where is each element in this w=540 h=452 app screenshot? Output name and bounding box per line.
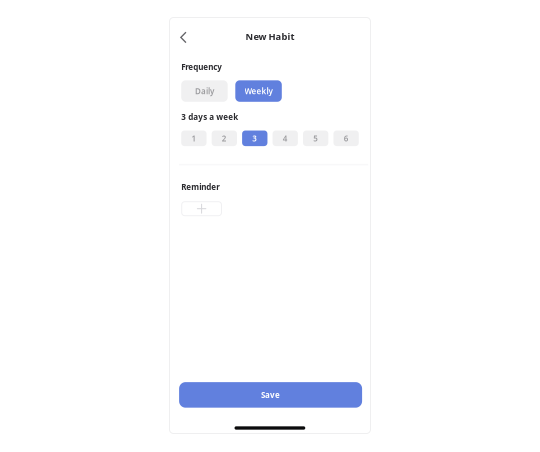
staticText: 4 bbox=[283, 133, 288, 144]
button[interactable]: 3 bbox=[242, 130, 267, 146]
button[interactable]: 2 bbox=[212, 130, 237, 146]
staticText: 2 bbox=[222, 133, 227, 144]
staticText: Daily bbox=[195, 86, 214, 96]
staticText: 3 days a week bbox=[181, 112, 238, 122]
button[interactable]: Daily bbox=[181, 80, 228, 102]
staticText: Weekly bbox=[244, 86, 272, 96]
staticText: New Habit bbox=[245, 30, 294, 42]
staticText: 6 bbox=[344, 133, 349, 144]
button[interactable]: 5 bbox=[303, 130, 328, 146]
staticText: Save bbox=[261, 390, 280, 400]
staticText: Frequency bbox=[181, 61, 222, 72]
staticText: Reminder bbox=[181, 182, 220, 192]
staticText: 1 bbox=[191, 133, 196, 144]
staticText: 5 bbox=[313, 133, 318, 144]
button[interactable]: Weekly bbox=[235, 80, 282, 102]
staticText: 3 bbox=[252, 133, 257, 144]
button[interactable]: Add reminder bbox=[181, 201, 222, 216]
button[interactable]: 1 bbox=[181, 130, 206, 146]
button[interactable]: Save bbox=[179, 382, 362, 408]
button[interactable]: 4 bbox=[272, 130, 298, 146]
button[interactable]: Back bbox=[173, 25, 193, 49]
button[interactable]: 6 bbox=[333, 130, 359, 146]
